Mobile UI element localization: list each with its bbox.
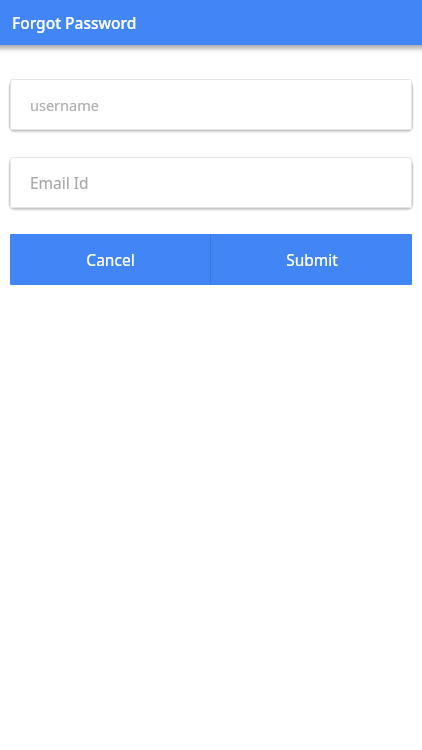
- staticText: Submit: [286, 249, 338, 270]
- button[interactable]: Submit: [211, 234, 412, 285]
- button[interactable]: Email Id: [10, 157, 412, 208]
- staticText: Forgot Password: [12, 12, 137, 33]
- staticText: Cancel: [86, 249, 135, 270]
- button[interactable]: Cancel: [10, 234, 210, 285]
- staticText: username: [30, 95, 99, 115]
- button[interactable]: username: [10, 79, 412, 130]
- staticText: Email Id: [30, 172, 89, 193]
